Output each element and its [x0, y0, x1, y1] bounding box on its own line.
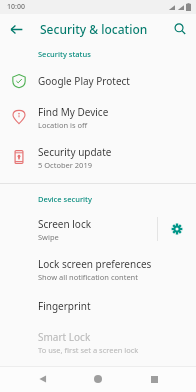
button[interactable]: Screen lock settings: [158, 209, 196, 249]
button[interactable]: Fingerprint: [0, 289, 196, 322]
staticText: Location is off: [38, 120, 88, 130]
staticText: Security & location: [40, 21, 148, 37]
button[interactable]: Home: [85, 366, 111, 392]
staticText: Security update: [38, 145, 112, 159]
button[interactable]: Google Play Protect: [0, 64, 196, 97]
staticText: Security status: [38, 49, 91, 59]
button[interactable]: Security update: [0, 137, 196, 177]
staticText: Find My Device: [38, 105, 109, 119]
button[interactable]: Back: [4, 17, 28, 41]
staticText: Show all notification content: [38, 272, 138, 282]
staticText: Device security: [38, 194, 92, 204]
button[interactable]: Smart Lock: [0, 322, 196, 362]
staticText: Swipe: [38, 232, 59, 242]
staticText: Screen lock: [38, 217, 92, 231]
button[interactable]: Screen lock: [0, 209, 157, 249]
button[interactable]: Find My Device: [0, 97, 196, 137]
button[interactable]: Search: [169, 18, 191, 40]
staticText: 10:00: [7, 2, 25, 12]
staticText: Smart Lock: [38, 330, 91, 344]
staticText: Fingerprint: [38, 299, 91, 313]
staticText: Lock screen preferences: [38, 257, 152, 271]
staticText: 5 October 2019: [38, 160, 92, 170]
staticText: To use, first set a screen lock: [38, 345, 139, 355]
staticText: Google Play Protect: [38, 74, 130, 88]
button[interactable]: Recent apps: [141, 366, 167, 392]
button[interactable]: Lock screen preferences: [0, 249, 196, 289]
button[interactable]: Back: [30, 366, 56, 392]
